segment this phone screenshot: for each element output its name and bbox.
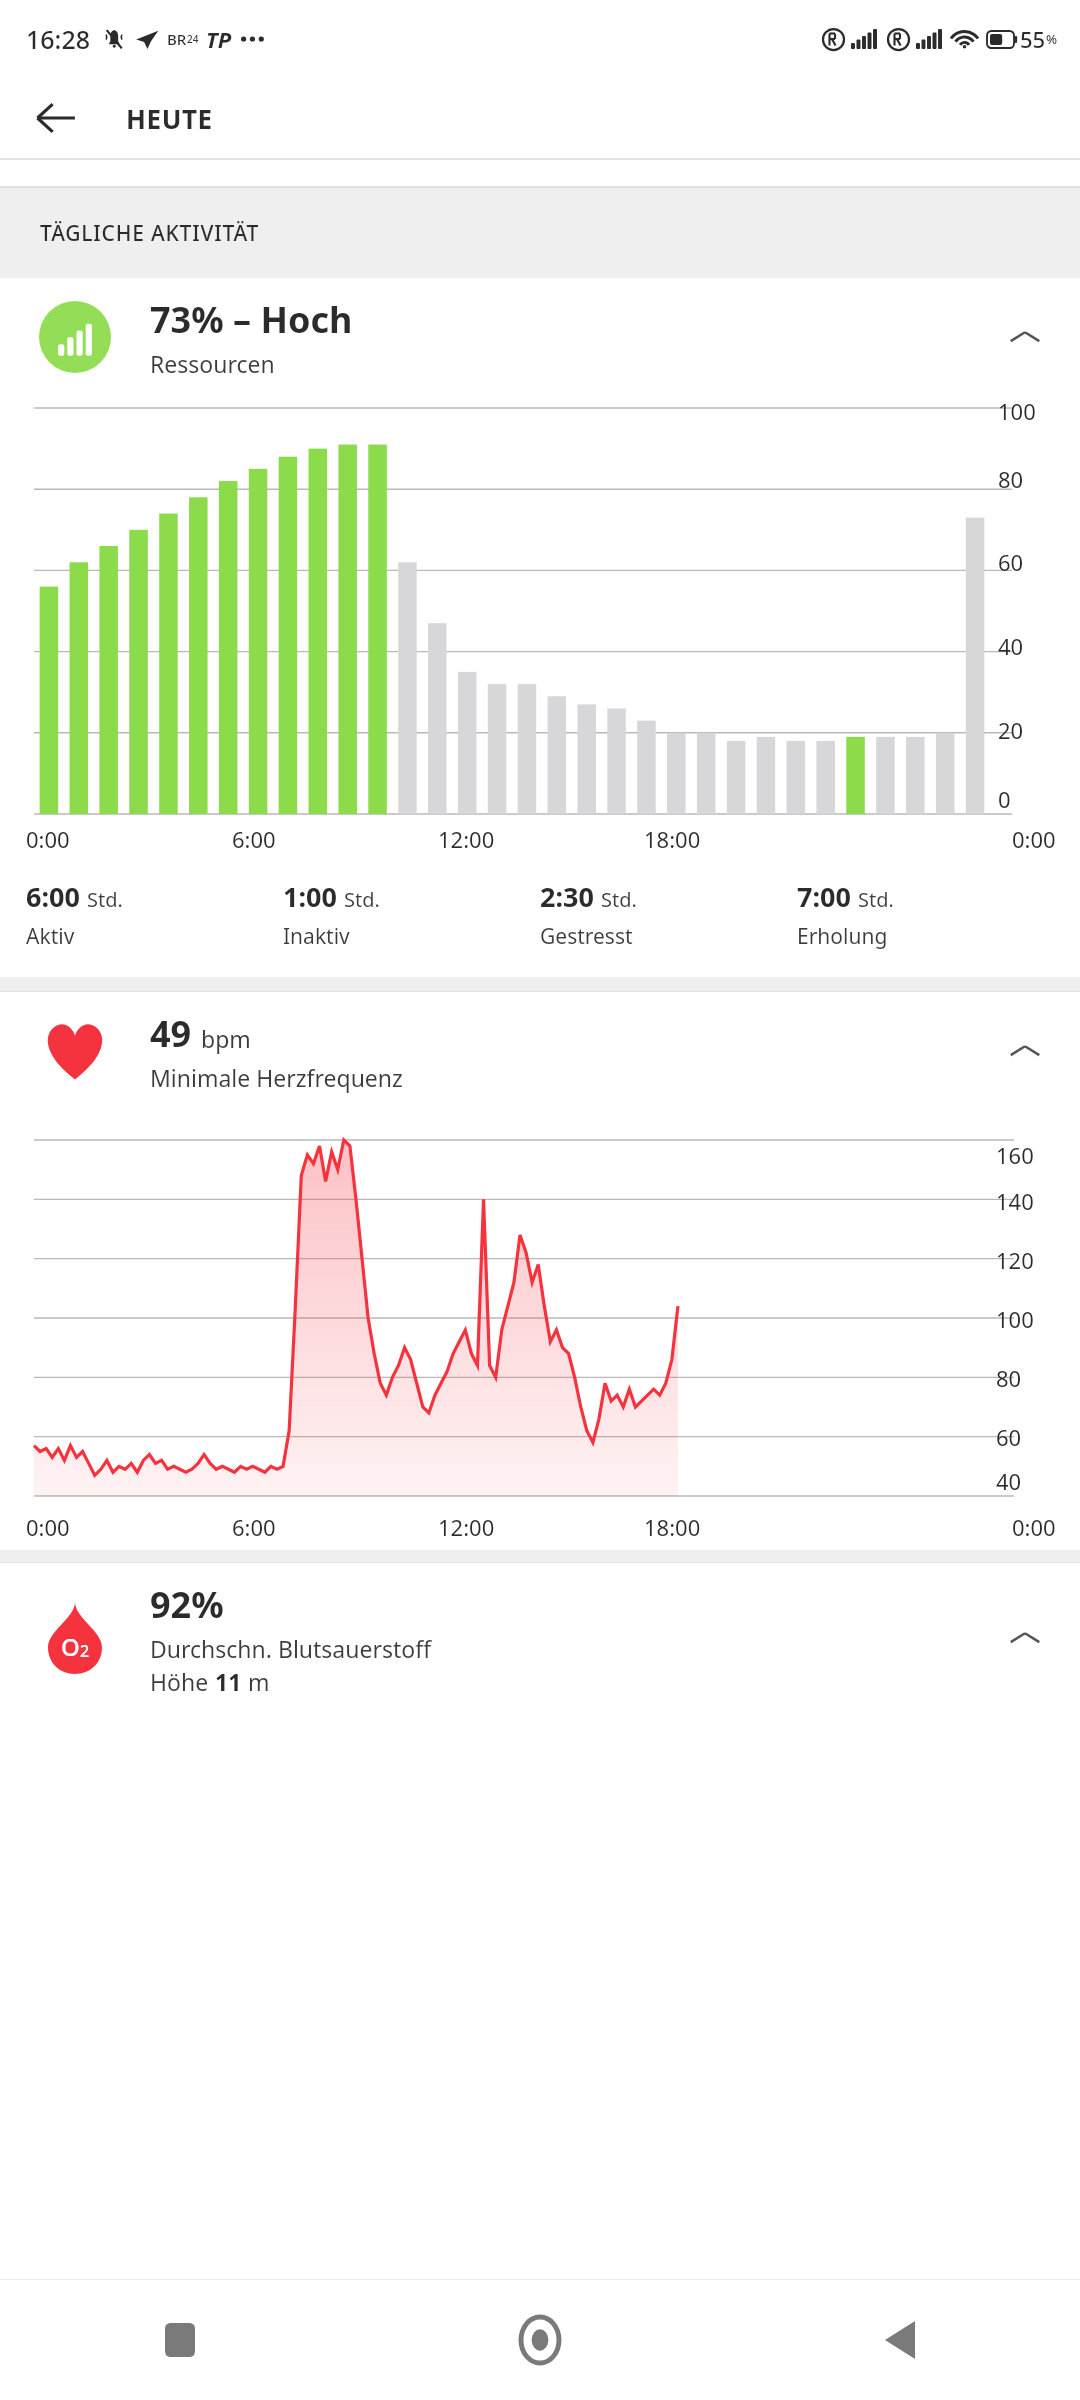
staticText: 1:00 — [283, 878, 337, 915]
button[interactable]: 73% – Hoch — [0, 278, 1080, 396]
staticText: 18:00 — [644, 1512, 701, 1542]
button[interactable]: Einklappen — [970, 1563, 1080, 1713]
staticText: 80 — [996, 1363, 1022, 1393]
staticText: Std. — [344, 886, 380, 913]
staticText: Minimale Herzfrequenz — [150, 1062, 403, 1093]
staticText: 6:00 — [232, 824, 276, 854]
staticText: Höhe — [150, 1666, 215, 1697]
staticText: 40 — [996, 1466, 1022, 1496]
staticText: TP — [206, 24, 232, 54]
button[interactable]: Einklappen — [970, 278, 1080, 396]
staticText: 18:00 — [644, 824, 701, 854]
staticText: O — [61, 1630, 80, 1663]
button[interactable]: Einklappen — [970, 992, 1080, 1110]
staticText: 12:00 — [438, 1512, 495, 1542]
staticText: HEUTE — [126, 101, 213, 136]
staticText: 6:00 — [26, 878, 80, 915]
staticText: 49 — [150, 1009, 192, 1058]
staticText: 2:30 — [540, 878, 594, 915]
staticText: TÄGLICHE AKTIVITÄT — [40, 219, 260, 248]
button[interactable]: Zurück — [720, 2280, 1080, 2400]
staticText: 73% – Hoch — [150, 295, 353, 344]
staticText: 92% — [150, 1580, 224, 1629]
staticText: 16:28 — [26, 22, 91, 56]
button[interactable]: O — [0, 1563, 1080, 1713]
staticText: 11 — [215, 1666, 242, 1697]
button[interactable]: 49 — [0, 992, 1080, 1110]
staticText: 60 — [996, 1422, 1022, 1452]
staticText: Inaktiv — [283, 922, 350, 951]
staticText: 6:00 — [232, 1512, 276, 1542]
staticText: Std. — [87, 886, 123, 913]
staticText: 12:00 — [438, 824, 495, 854]
staticText: bpm — [201, 1023, 251, 1054]
staticText: 0:00 — [26, 1512, 70, 1542]
button[interactable]: Startseite — [360, 2280, 720, 2400]
staticText: BR — [167, 29, 187, 49]
staticText: 7:00 — [797, 878, 851, 915]
staticText: 2 — [80, 1640, 90, 1662]
staticText: Ressourcen — [150, 348, 275, 379]
staticText: 0 — [998, 784, 1011, 814]
staticText: Std. — [858, 886, 894, 913]
staticText: 40 — [998, 631, 1024, 661]
staticText: Durchschn. Blutsauerstoff — [150, 1633, 431, 1664]
staticText: 100 — [998, 396, 1036, 426]
staticText: Std. — [601, 886, 637, 913]
staticText: 0:00 — [26, 824, 70, 854]
button[interactable]: Letzte Apps — [0, 2280, 360, 2400]
staticText: 20 — [998, 715, 1024, 745]
staticText: 60 — [998, 547, 1024, 577]
staticText: Aktiv — [26, 922, 75, 951]
staticText: 0:00 — [1012, 1512, 1056, 1542]
staticText: 24 — [187, 32, 199, 46]
staticText: Gestresst — [540, 922, 633, 951]
staticText: 100 — [996, 1304, 1034, 1334]
staticText: Erholung — [797, 922, 888, 951]
staticText: % — [1046, 30, 1058, 48]
staticText: 140 — [996, 1186, 1034, 1216]
staticText: 0:00 — [1012, 824, 1056, 854]
staticText: 120 — [996, 1245, 1034, 1275]
staticText: m — [242, 1666, 270, 1697]
staticText: 160 — [996, 1140, 1034, 1170]
staticText: 80 — [998, 464, 1024, 494]
staticText: 55 — [1020, 24, 1046, 54]
button[interactable]: Zurück — [24, 86, 88, 150]
